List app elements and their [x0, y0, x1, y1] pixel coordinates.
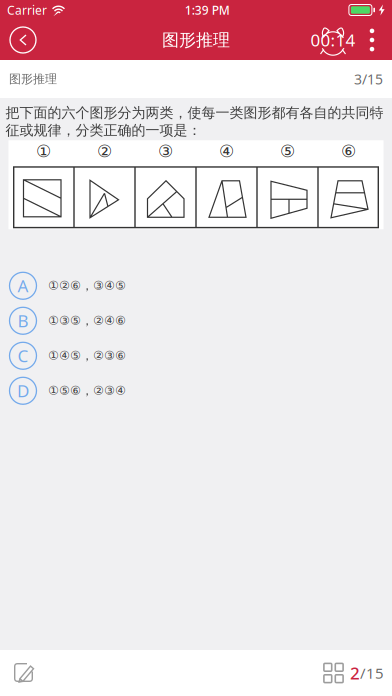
staticText: ①⑤⑥，②③④	[48, 383, 126, 398]
staticText: ①④⑤，②③⑥	[48, 348, 126, 363]
staticText: 00:14	[310, 28, 355, 52]
button[interactable]: Back	[9, 26, 37, 54]
staticText: ①②⑥，③④⑤	[48, 278, 126, 293]
staticText: B	[17, 309, 28, 332]
staticText: 3/15	[354, 69, 383, 89]
staticText: /15	[360, 663, 384, 683]
staticText: Carrier	[7, 2, 47, 18]
staticText: A	[17, 274, 28, 297]
staticText: ⑤	[280, 141, 295, 161]
staticText: ②	[97, 141, 112, 161]
staticText: ①③⑤，②④⑥	[48, 313, 126, 328]
button[interactable]: Notes	[8, 657, 40, 689]
staticText: ④	[219, 141, 234, 161]
staticText: C	[17, 344, 28, 367]
staticText: D	[17, 379, 29, 402]
button[interactable]: B	[0, 303, 392, 338]
button[interactable]: Question list, 2 of 15	[323, 657, 384, 689]
staticText: 图形推理	[162, 29, 230, 51]
button[interactable]: Timer 00:14	[311, 24, 355, 56]
staticText: 2	[350, 661, 360, 685]
button[interactable]: More options	[361, 27, 383, 53]
button[interactable]: C	[0, 338, 392, 373]
staticText: ③	[158, 141, 173, 161]
staticText: ①	[36, 141, 51, 161]
button[interactable]: D	[0, 373, 392, 408]
staticText: ⑥	[341, 141, 356, 161]
staticText: 图形推理	[9, 71, 57, 86]
staticText: 把下面的六个图形分为两类，使每一类图形都有各自的共同特征或规律，分类正确的一项是…	[5, 104, 383, 139]
button[interactable]: A	[0, 268, 392, 303]
staticText: 1:39 PM	[185, 2, 230, 18]
